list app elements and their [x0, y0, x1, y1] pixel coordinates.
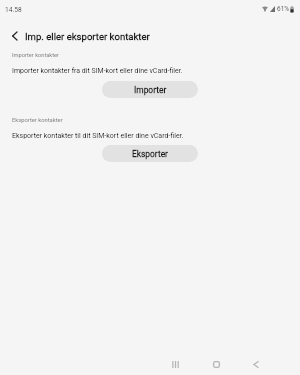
- button[interactable]: Back: [241, 350, 269, 375]
- staticText: Imp. eller eksporter kontakter: [25, 31, 150, 42]
- button[interactable]: Importer: [102, 81, 198, 98]
- button[interactable]: Recent apps: [161, 350, 189, 375]
- button[interactable]: Navigate up: [4, 26, 24, 46]
- staticText: Importer kontakter fra dit SIM-kort elle…: [12, 67, 183, 75]
- button[interactable]: Eksporter: [102, 145, 198, 162]
- button[interactable]: Home: [202, 350, 230, 375]
- staticText: Eksporter kontakter: [12, 117, 63, 124]
- staticText: Eksporter: [132, 149, 168, 159]
- staticText: Eksporter kontakter til dit SIM-kort ell…: [12, 131, 184, 139]
- staticText: 61%: [277, 5, 289, 13]
- staticText: Importer: [134, 85, 167, 95]
- staticText: Importer kontakter: [12, 52, 60, 59]
- staticText: 14.58: [5, 6, 22, 14]
